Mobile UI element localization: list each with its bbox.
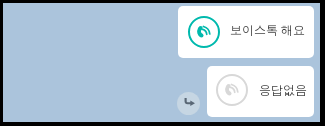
button[interactable]: 응답없음 xyxy=(207,66,314,117)
staticText: 보이스톡 해요 xyxy=(230,21,306,37)
button[interactable]: Forward xyxy=(177,92,200,115)
button[interactable]: 보이스톡 해요 xyxy=(178,6,314,58)
staticText: 응답없음 xyxy=(259,82,307,97)
